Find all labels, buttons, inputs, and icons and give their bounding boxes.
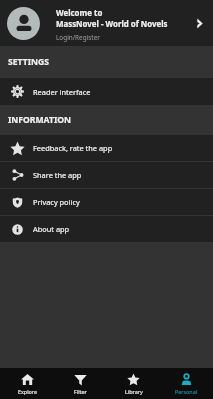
button[interactable]: Explore [0,368,54,399]
staticText: INFORMATION [8,114,72,126]
staticText: SETTINGS [8,56,49,68]
staticText: Privacy policy [33,197,80,207]
staticText: Library [125,388,143,395]
button[interactable]: Library [107,368,160,399]
staticText: Login/Register [56,33,100,42]
button[interactable]: Reader interface [0,78,213,105]
other: Open account [191,8,207,38]
staticText: Personal [175,388,198,395]
staticText: Welcome to [56,8,103,19]
button[interactable]: Welcome to [0,0,213,46]
staticText: Share the app [33,170,82,180]
staticText: Feedback, rate the app [33,143,113,153]
button[interactable]: Privacy policy [0,189,213,215]
staticText: Reader interface [33,87,91,97]
button[interactable]: Share the app [0,162,213,188]
button[interactable]: Filter [54,368,107,399]
button[interactable]: Personal [160,368,213,399]
staticText: MassNovel - World of Novels [56,19,168,30]
staticText: Filter [74,388,87,395]
staticText: Explore [18,388,37,395]
button[interactable]: About app [0,216,213,242]
staticText: About app [33,224,70,234]
button[interactable]: Feedback, rate the app [0,135,213,161]
